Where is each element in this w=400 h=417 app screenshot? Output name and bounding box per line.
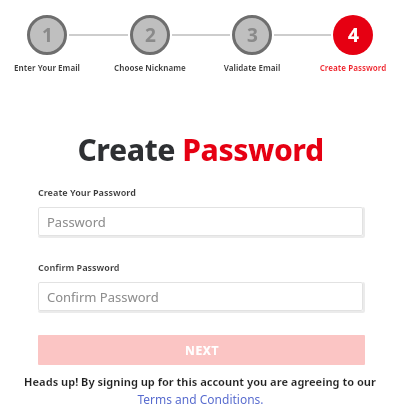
staticText: Enter Your Email: [0, 62, 95, 73]
staticText: 4: [348, 22, 359, 48]
button[interactable]: Step 4: [332, 14, 374, 56]
button[interactable]: Confirm Password: [38, 282, 363, 311]
button[interactable]: Step 2: [129, 14, 171, 56]
button[interactable]: Terms and Conditions.: [137, 391, 264, 407]
button[interactable]: Step 3: [231, 14, 273, 56]
staticText: Create Password: [305, 62, 400, 73]
staticText: Terms and Conditions.: [137, 391, 264, 407]
staticText: 1: [42, 22, 53, 48]
staticText: 2: [145, 22, 156, 48]
staticText: 3: [247, 22, 258, 48]
staticText: Password: [47, 213, 106, 231]
button[interactable]: Password: [38, 207, 363, 236]
staticText: NEXT: [185, 342, 219, 358]
button[interactable]: Step 1: [26, 14, 68, 56]
staticText: Confirm Password: [38, 261, 365, 273]
button[interactable]: NEXT: [38, 335, 365, 365]
staticText: Validate Email: [204, 62, 300, 73]
staticText: Create Password: [77, 129, 324, 170]
staticText: Heads up! By signing up for this account…: [6, 374, 394, 389]
staticText: Confirm Password: [47, 288, 159, 306]
staticText: Create Your Password: [38, 186, 365, 198]
staticText: Choose Nickname: [102, 62, 198, 73]
